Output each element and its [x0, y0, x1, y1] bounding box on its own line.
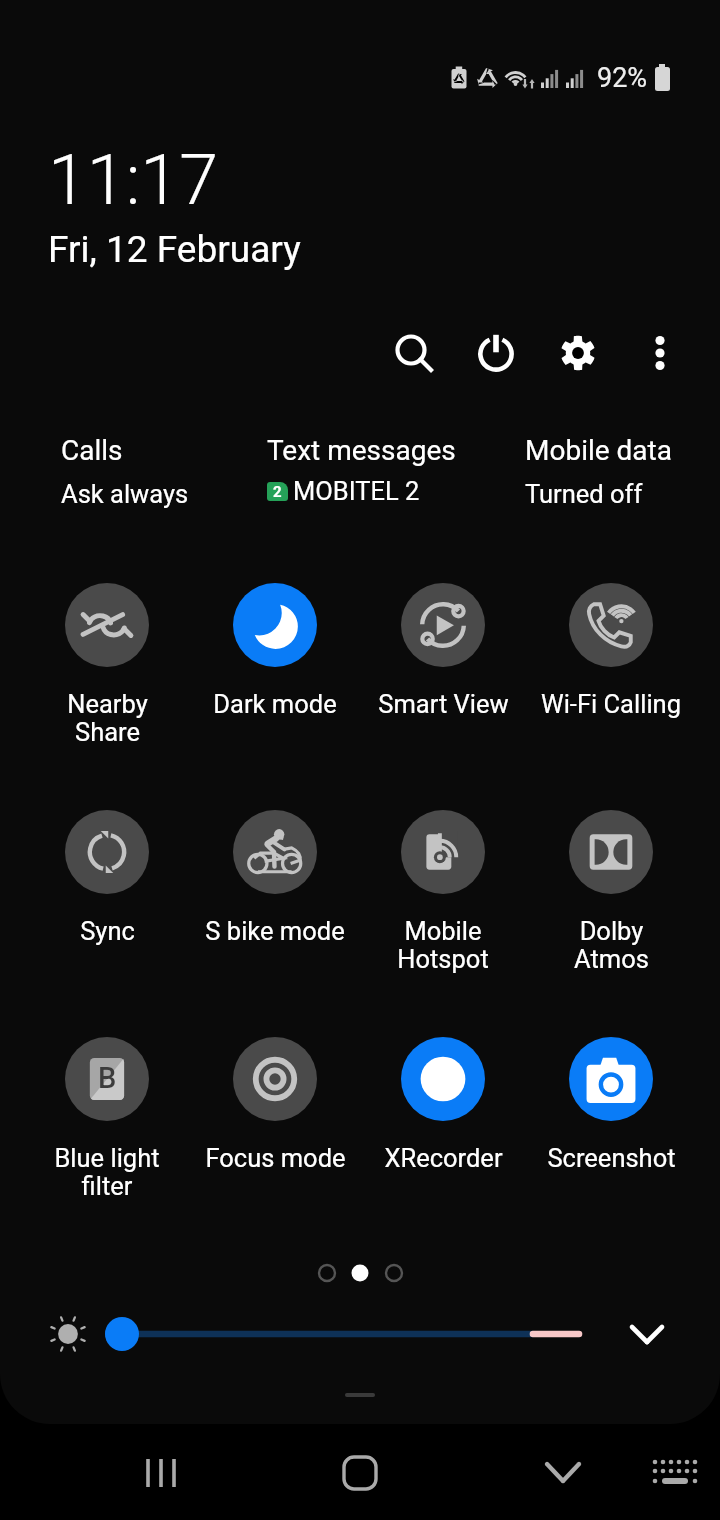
button[interactable]: Back [518, 1425, 608, 1520]
staticText: Sync [80, 916, 135, 946]
staticText: 2 [273, 483, 282, 501]
staticText: Blue light filter [54, 1143, 160, 1202]
button[interactable]: Mobile Hotspot [359, 810, 527, 975]
staticText: 11:17 [48, 139, 219, 221]
staticText: Nearby Share [67, 689, 148, 748]
button[interactable]: Smart View [359, 583, 527, 719]
staticText: Ask always [61, 479, 189, 509]
button[interactable]: Mobile data [525, 434, 705, 509]
staticText: Mobile Hotspot [397, 916, 489, 975]
staticText: Turned off [525, 479, 643, 509]
staticText: Wi-Fi Calling [541, 689, 681, 719]
button[interactable]: Keyboard [630, 1425, 720, 1520]
button[interactable]: Text messages [267, 434, 517, 506]
button[interactable]: S bike mode [191, 810, 359, 946]
staticText: Smart View [378, 689, 509, 719]
staticText: B [98, 1061, 117, 1095]
button[interactable]: Nearby Share [23, 583, 191, 748]
button[interactable]: Recent apps [116, 1425, 206, 1520]
staticText: 92% [597, 62, 648, 94]
staticText: Screenshot [547, 1143, 676, 1173]
button[interactable]: B [23, 1037, 191, 1202]
staticText: Dark mode [213, 689, 337, 719]
button[interactable]: XRecorder [359, 1037, 527, 1173]
button[interactable]: Settings [544, 318, 612, 388]
button[interactable]: Power off [462, 318, 530, 388]
button[interactable]: Focus mode [191, 1037, 359, 1173]
button[interactable]: Calls [61, 434, 261, 509]
staticText: Calls [61, 434, 123, 467]
button[interactable]: Dolby Atmos [527, 810, 695, 975]
button[interactable]: Dark mode [191, 583, 359, 719]
staticText: Text messages [267, 434, 456, 467]
button[interactable]: Screenshot [527, 1037, 695, 1173]
staticText: Fri, 12 February [48, 228, 301, 271]
staticText: Mobile data [525, 434, 672, 467]
button[interactable]: Sync [23, 810, 191, 946]
staticText: S bike mode [205, 916, 345, 946]
button[interactable]: Search [380, 318, 448, 388]
staticText: Focus mode [205, 1143, 346, 1173]
button[interactable]: 11:17 [48, 139, 301, 271]
staticText: MOBITEL 2 [293, 476, 420, 506]
button[interactable]: More options [626, 318, 694, 388]
staticText: XRecorder [384, 1143, 503, 1173]
staticText: Dolby Atmos [574, 916, 649, 975]
button[interactable]: Wi-Fi Calling [527, 583, 695, 719]
button[interactable]: Home [315, 1425, 405, 1520]
